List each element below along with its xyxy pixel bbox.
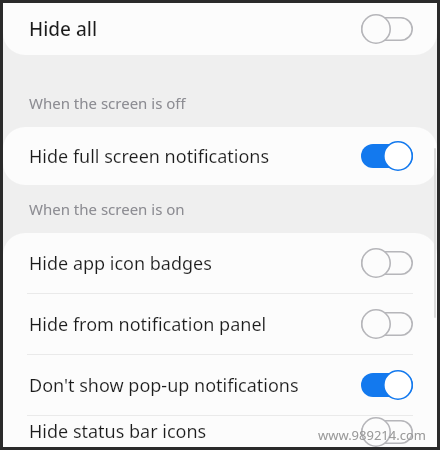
button[interactable]: Hide all — [3, 3, 437, 55]
staticText: Don't show pop-up notifications — [29, 373, 299, 398]
button[interactable]: Hide app icon badges — [3, 233, 437, 293]
staticText: Hide app icon badges — [29, 251, 212, 276]
button[interactable]: Toggle off — [361, 14, 413, 44]
staticText: Hide from notification panel — [29, 312, 267, 337]
staticText: When the screen is on — [29, 199, 185, 219]
button[interactable]: Toggle on — [361, 370, 413, 400]
button[interactable]: Hide from notification panel — [3, 294, 437, 354]
button[interactable]: Toggle off — [361, 248, 413, 278]
staticText: www.989214.com — [318, 426, 426, 444]
staticText: When the screen is off — [29, 93, 186, 113]
staticText: Hide full screen notifications — [29, 144, 270, 169]
button[interactable]: Don't show pop-up notifications — [3, 355, 437, 415]
button[interactable]: Toggle off — [361, 309, 413, 339]
staticText: Hide all — [29, 16, 98, 42]
button[interactable]: Hide full screen notifications — [3, 127, 437, 185]
button[interactable]: Hide status bar icons — [3, 416, 437, 447]
button[interactable]: Toggle off — [361, 417, 413, 447]
button[interactable]: Toggle on — [361, 141, 413, 171]
staticText: Hide status bar icons — [29, 419, 207, 444]
